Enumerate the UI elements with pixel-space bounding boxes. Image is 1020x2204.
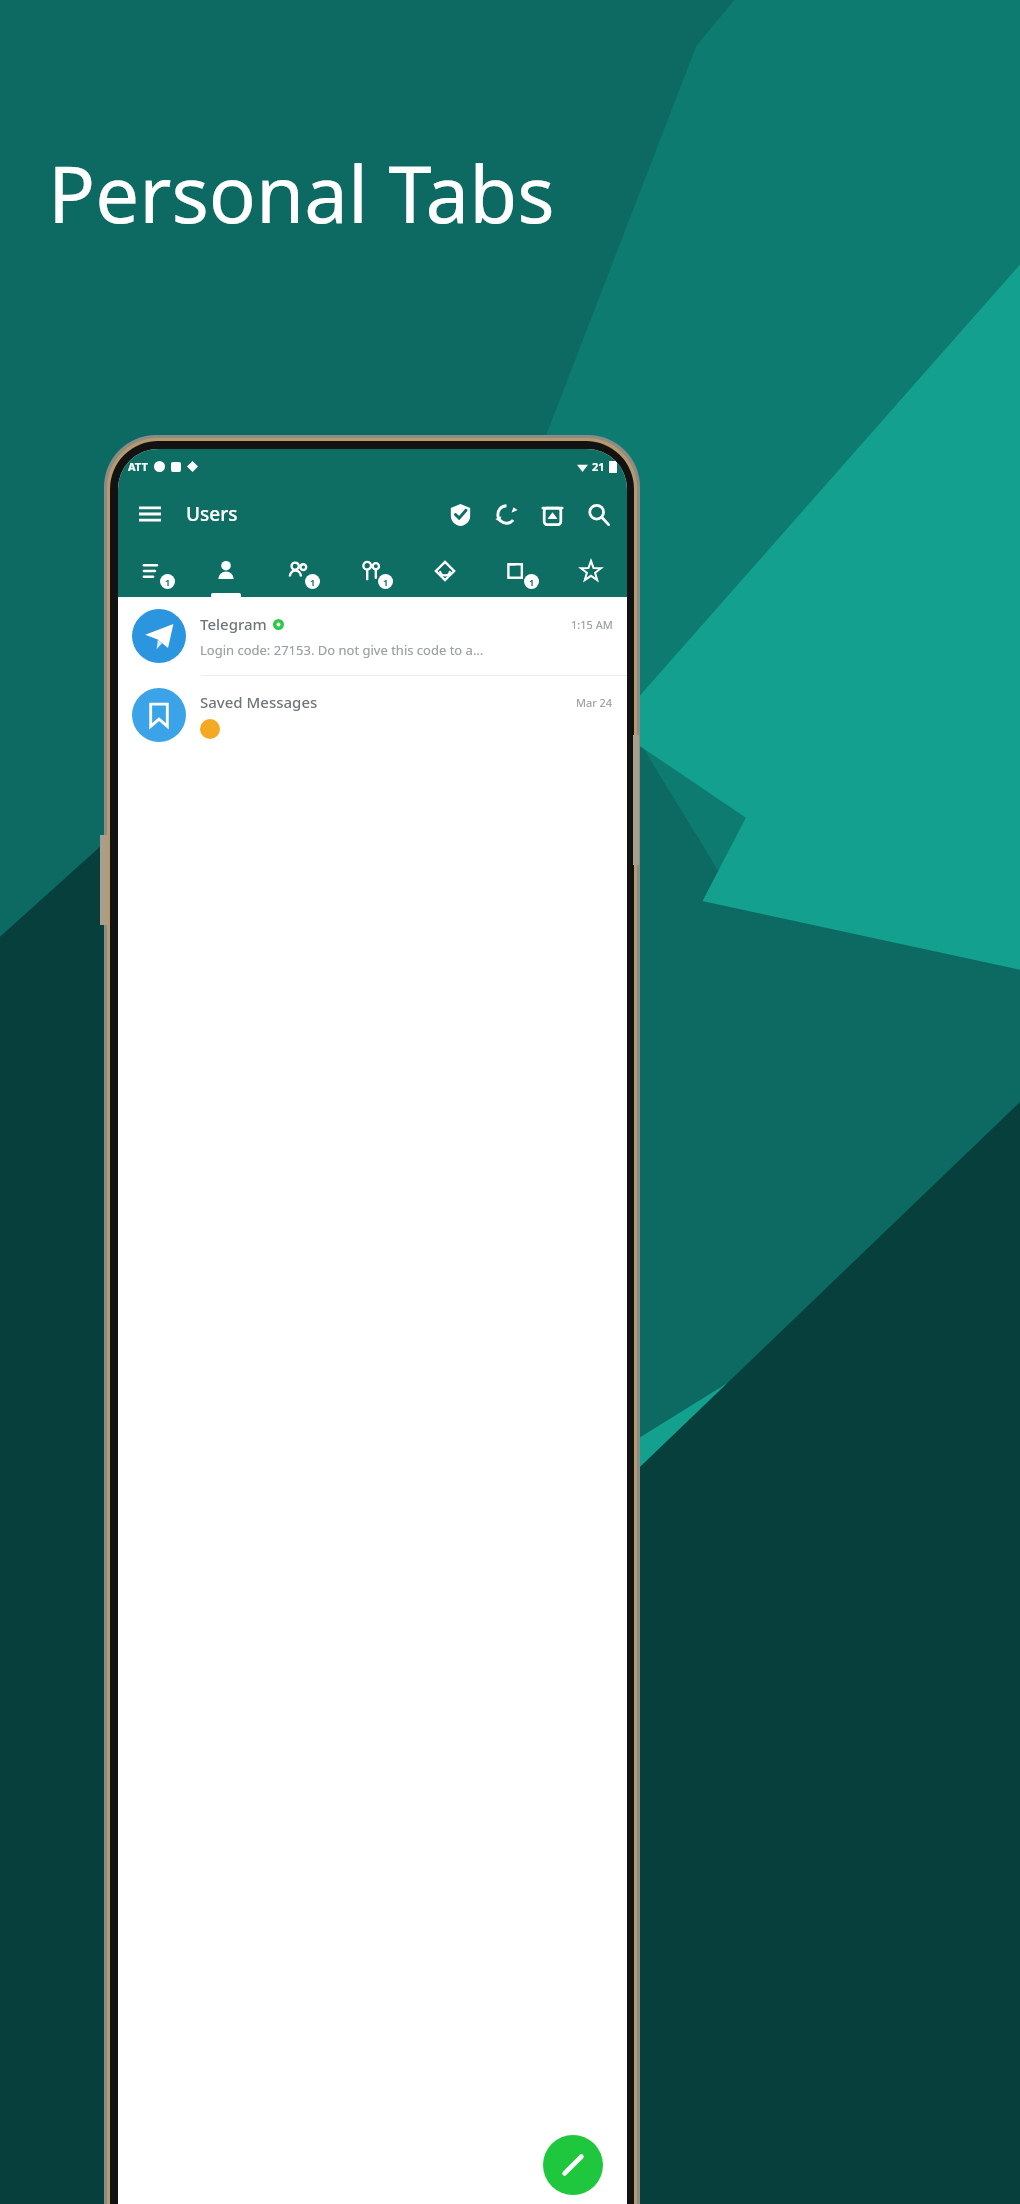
button[interactable]: Chat folder tab — [408, 545, 481, 597]
staticText: Saved Messages — [200, 692, 318, 712]
button[interactable]: Chat folder tab — [118, 545, 190, 597]
button[interactable]: Chat folder tab — [554, 545, 627, 597]
button[interactable]: Open navigation menu — [128, 492, 172, 536]
button[interactable]: Chat folder tab — [481, 545, 554, 597]
staticText: 1 — [310, 576, 316, 588]
button[interactable]: Archive — [529, 491, 575, 537]
staticText: Personal Tabs — [48, 140, 555, 246]
staticText: 1 — [165, 576, 171, 588]
staticText: Login code: 27153. Do not give this code… — [200, 641, 484, 659]
staticText: 1 — [529, 576, 535, 588]
staticText: Telegram — [200, 614, 267, 634]
button[interactable]: Saved Messages — [118, 676, 627, 754]
button[interactable]: Search — [575, 491, 621, 537]
button[interactable]: Chat folder tab — [335, 545, 408, 597]
button[interactable]: Telegram — [118, 597, 627, 675]
button[interactable]: Chat folder tab — [190, 545, 262, 597]
staticText: 1 — [383, 576, 389, 588]
staticText: Mar 24 — [576, 695, 613, 710]
staticText: 1:15 AM — [571, 617, 613, 632]
staticText: ATT — [128, 459, 148, 474]
staticText: 21 — [592, 459, 605, 474]
button[interactable]: Chat folder tab — [262, 545, 335, 597]
button[interactable]: Privacy shield — [437, 491, 483, 537]
button[interactable]: Compose new message — [543, 2135, 603, 2195]
button[interactable]: Sync — [483, 491, 529, 537]
staticText: Users — [186, 501, 238, 527]
